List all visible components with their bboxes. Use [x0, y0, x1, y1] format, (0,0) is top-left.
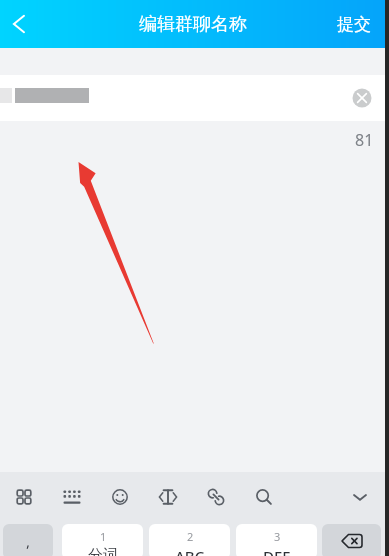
- button[interactable]: Collapse: [336, 472, 384, 521]
- staticText: 提交: [337, 14, 371, 35]
- button[interactable]: 提交: [337, 14, 371, 35]
- staticText: 1: [100, 529, 107, 544]
- staticText: 3: [274, 529, 281, 544]
- button[interactable]: 3: [236, 524, 317, 556]
- button[interactable]: 1: [62, 524, 143, 556]
- staticText: ,: [26, 531, 31, 551]
- button[interactable]: Clip: [192, 472, 240, 521]
- button[interactable]: Keyboard: [48, 472, 96, 521]
- button[interactable]: Apps: [0, 472, 48, 521]
- button[interactable]: Back: [0, 0, 42, 48]
- button[interactable]: ,: [3, 524, 53, 556]
- staticText: ABC: [175, 546, 205, 556]
- staticText: 编辑群聊名称: [139, 13, 247, 36]
- staticText: 81: [355, 129, 374, 151]
- button[interactable]: Cursor: [144, 472, 192, 521]
- staticText: DEF: [263, 546, 291, 556]
- button[interactable]: Clear: [348, 84, 376, 112]
- button[interactable]: 2: [149, 524, 230, 556]
- staticText: 2: [187, 529, 194, 544]
- button[interactable]: Emoji: [96, 472, 144, 521]
- staticText: 分词: [88, 546, 118, 556]
- button[interactable]: [322, 524, 381, 556]
- button[interactable]: Search: [240, 472, 288, 521]
